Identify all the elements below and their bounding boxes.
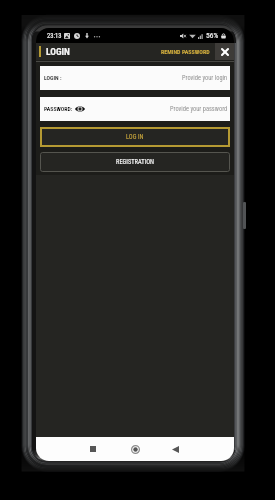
staticText: 23:13 [47,32,62,40]
staticText: LOG IN [126,133,144,141]
staticText: LOGIN : [44,75,62,82]
staticText: REMIND PASSWORD [161,48,210,55]
button[interactable]: Home [124,438,146,460]
staticText: PASSWORD: [44,106,73,113]
staticText: LOGIN [46,46,70,57]
staticText: Provide your login [182,74,228,82]
button[interactable]: REGISTRATION [40,152,230,172]
button[interactable]: Recents [82,438,104,460]
button[interactable]: REMIND PASSWORD [158,43,213,60]
staticText: Provide your password [170,105,228,113]
button[interactable]: LOGIN : [40,66,230,90]
button[interactable]: Back [164,438,186,460]
button[interactable]: Close [215,43,234,60]
staticText: 56% [206,31,219,40]
staticText: REGISTRATION [116,158,154,166]
button[interactable]: PASSWORD: [40,97,230,121]
button[interactable]: LOG IN [40,127,230,147]
